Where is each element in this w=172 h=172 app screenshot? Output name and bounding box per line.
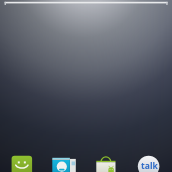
button[interactable]: People xyxy=(51,152,77,172)
button[interactable]: Market xyxy=(93,152,119,172)
button[interactable]: Google search xyxy=(0,0,172,172)
staticText: talk xyxy=(141,160,158,172)
button[interactable]: Talk xyxy=(136,152,162,172)
button[interactable]: Messaging xyxy=(9,152,35,172)
